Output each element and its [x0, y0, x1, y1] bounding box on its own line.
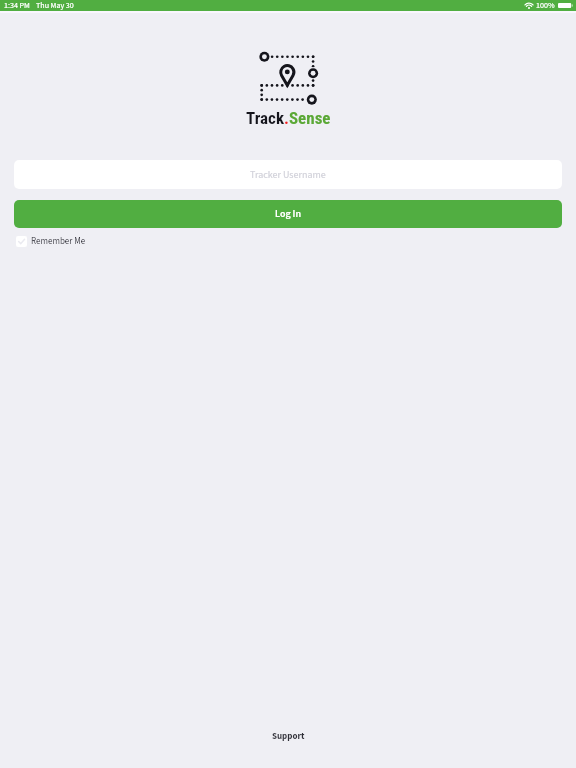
button[interactable]: Tracker Username: [14, 160, 562, 189]
staticText: 100%: [536, 0, 555, 11]
other: Track.Sense logo: [254, 50, 323, 106]
staticText: Thu May 30: [36, 0, 74, 11]
staticText: Tracker Username: [250, 168, 326, 182]
button[interactable]: Log In: [14, 200, 562, 228]
button[interactable]: Support: [262, 726, 315, 747]
staticText: Track.Sense: [246, 108, 331, 128]
staticText: 1:34 PM: [4, 0, 30, 11]
staticText: Support: [272, 730, 305, 743]
staticText: Remember Me: [31, 235, 86, 248]
staticText: Log In: [275, 207, 301, 221]
button[interactable]: Remember Me checkbox: [16, 235, 86, 248]
other: Battery 100 percent: [558, 3, 573, 8]
other: Wi-Fi: [525, 1, 533, 10]
